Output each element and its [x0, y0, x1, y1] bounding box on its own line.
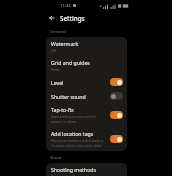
button[interactable]: Tap-to-fix — [46, 103, 127, 127]
staticText: Off — [51, 48, 57, 53]
staticText: Settings — [60, 14, 85, 22]
button[interactable]: Level — [46, 75, 127, 89]
staticText: Add location tags — [51, 130, 94, 137]
staticText: Tap to take, Show palm — [51, 174, 92, 176]
button[interactable]: Shooting methods — [46, 163, 127, 176]
staticText: None — [51, 67, 61, 72]
staticText: Shooting methods — [51, 166, 96, 173]
button[interactable]: Shutter sound — [46, 89, 127, 103]
button[interactable]: Watermark — [46, 37, 127, 56]
staticText: Grid and guides — [51, 59, 90, 66]
staticText: Start editing as soon as the picture is … — [51, 114, 107, 124]
staticText: General — [50, 29, 66, 35]
button[interactable]: Toggle on — [110, 135, 123, 143]
button[interactable]: Toggle on — [110, 111, 123, 119]
button[interactable]: Back — [46, 12, 58, 24]
staticText: Photos and videos will include a locatio… — [51, 138, 107, 148]
staticText: Tap-to-fix — [51, 106, 74, 113]
staticText: 11:42 — [60, 3, 71, 9]
staticText: Level — [51, 79, 64, 86]
staticText: Shoot — [50, 155, 62, 161]
button[interactable]: Grid and guides — [46, 56, 127, 75]
staticText: Watermark — [51, 40, 79, 47]
staticText: Shutter sound — [51, 93, 86, 100]
button[interactable]: Toggle on — [110, 78, 123, 86]
button[interactable]: Toggle off — [110, 92, 123, 100]
button[interactable]: Add location tags — [46, 127, 127, 151]
